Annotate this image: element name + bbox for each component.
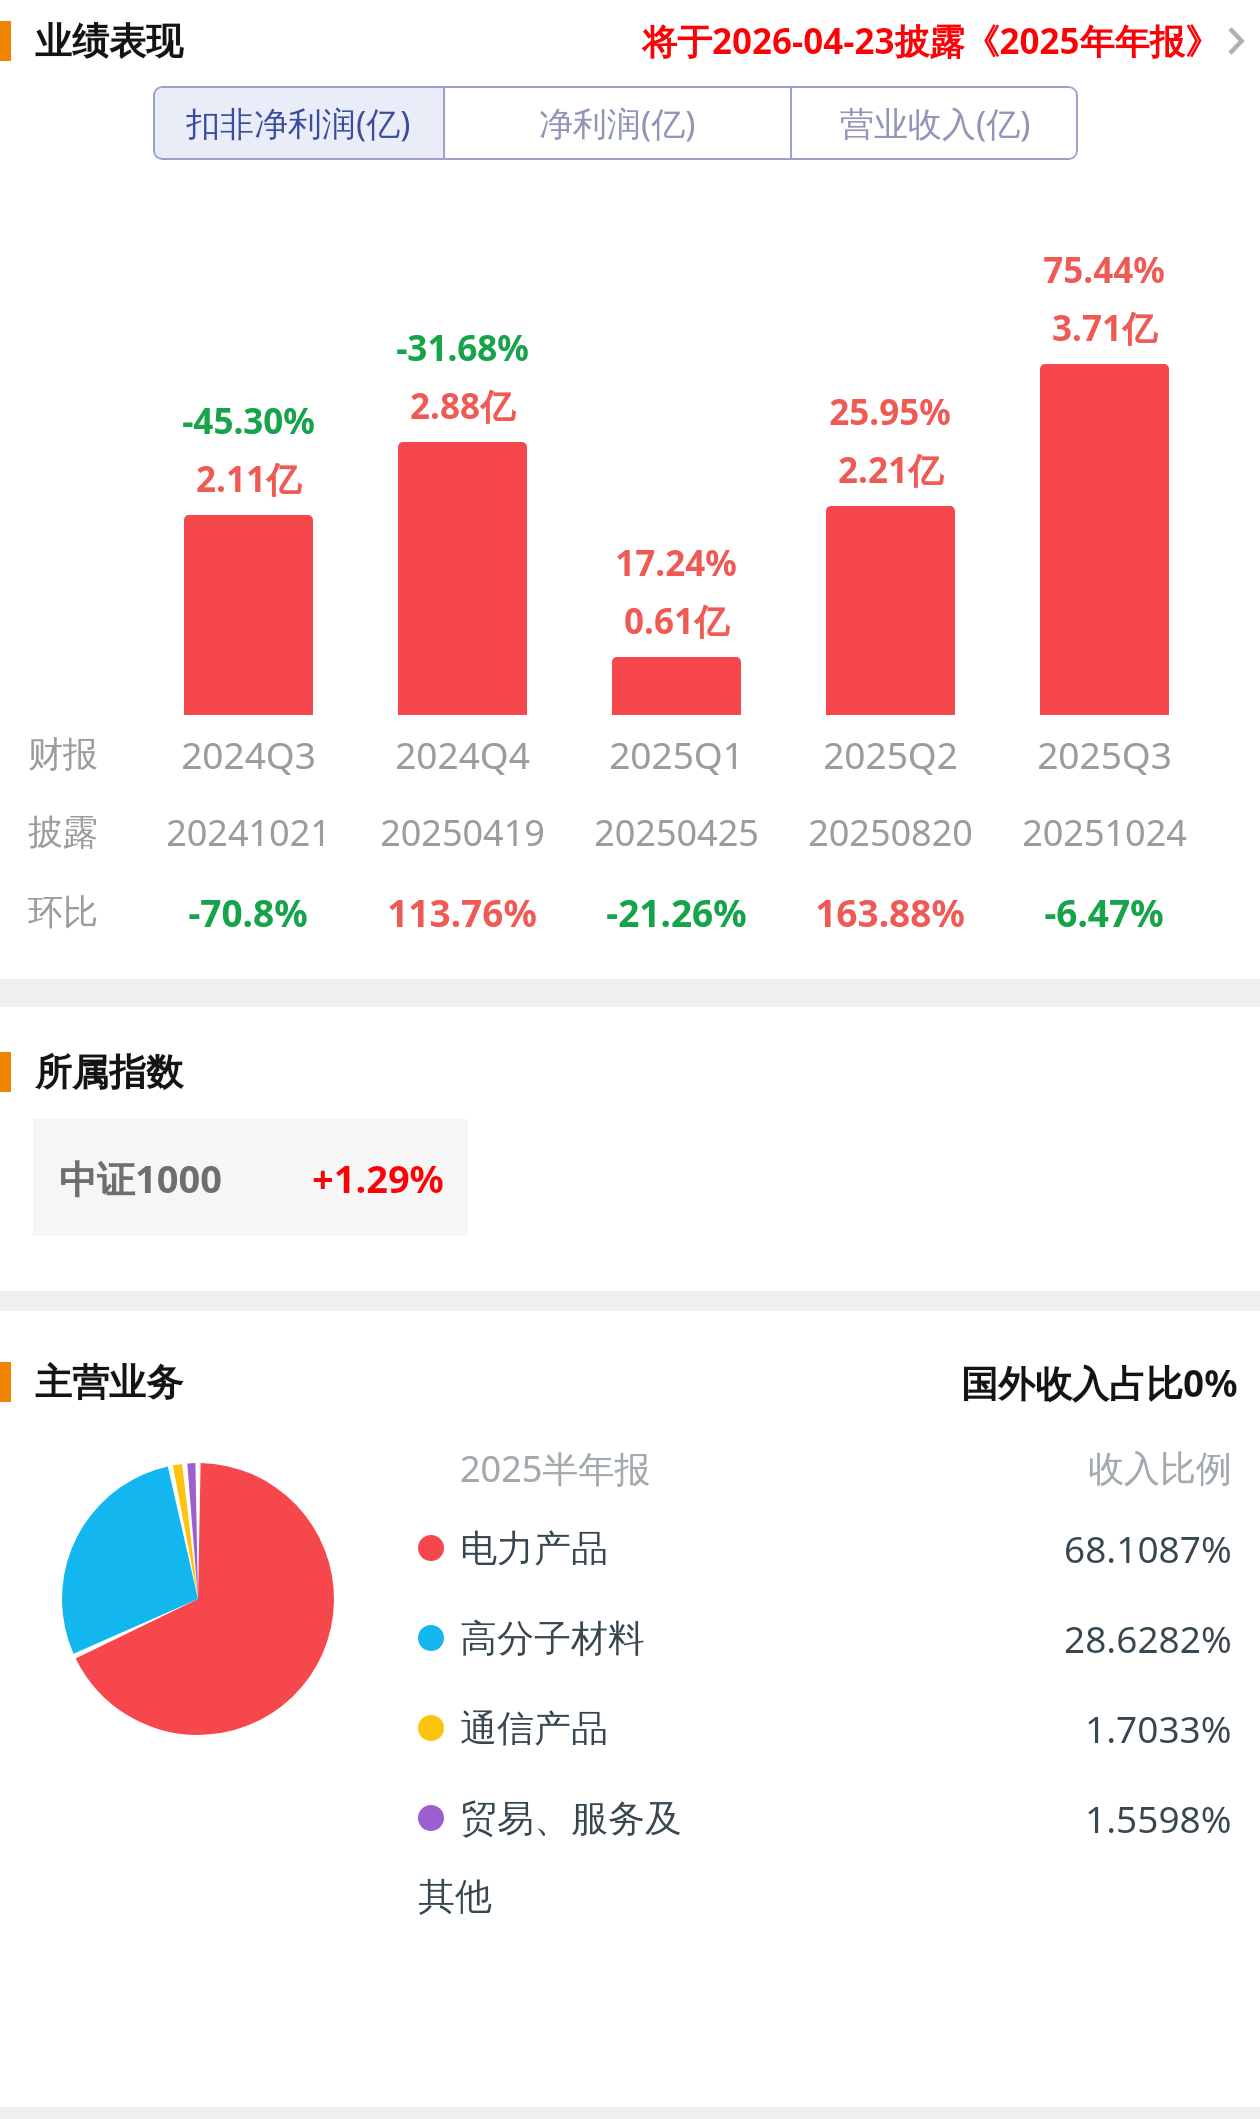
staticText: 披露 <box>28 810 98 854</box>
button[interactable]: 高分子材料 <box>400 1593 1232 1683</box>
button[interactable]: 通信产品 <box>400 1683 1232 1773</box>
staticText: 0.61亿 <box>624 597 729 645</box>
staticText: 高分子材料 <box>460 1615 645 1662</box>
staticText: -21.26% <box>606 887 747 937</box>
staticText: 75.44% <box>1043 246 1165 294</box>
staticText: 20250419 <box>380 808 545 857</box>
staticText: 28.6282% <box>1064 1613 1232 1663</box>
staticText: 2024Q3 <box>181 729 316 779</box>
staticText: 业绩表现 <box>35 18 183 65</box>
staticText: 1.5598% <box>1085 1793 1232 1843</box>
staticText: 20250425 <box>594 808 759 857</box>
staticText: 国外收入占比0% <box>961 1357 1238 1408</box>
button[interactable]: 25.95% <box>783 170 997 715</box>
staticText: +1.29% <box>312 1152 444 1204</box>
button[interactable]: 贸易、服务及 <box>400 1773 1232 1929</box>
staticText: 17.24% <box>615 539 737 587</box>
staticText: 113.76% <box>387 887 537 937</box>
staticText: 主营业务 <box>35 1359 183 1406</box>
staticText: 收入比例 <box>1088 1446 1232 1491</box>
staticText: 营业收入(亿) <box>840 100 1031 146</box>
staticText: -45.30% <box>182 397 315 445</box>
button[interactable]: -45.30% <box>141 170 355 715</box>
button[interactable]: 75.44% <box>997 170 1211 715</box>
staticText: 通信产品 <box>460 1705 608 1752</box>
staticText: -31.68% <box>396 324 529 372</box>
staticText: 其他 <box>418 1873 492 1920</box>
staticText: 25.95% <box>829 388 951 436</box>
staticText: -70.8% <box>188 887 308 937</box>
staticText: 1.7033% <box>1085 1703 1232 1753</box>
button[interactable]: 将于2026-04-23披露《2025年年报》 <box>642 17 1260 65</box>
staticText: 2025半年报 <box>460 1444 651 1493</box>
staticText: 2025Q3 <box>1037 729 1172 779</box>
button[interactable]: 扣非净利润(亿) <box>153 86 443 160</box>
staticText: 2.88亿 <box>410 382 515 430</box>
staticText: 163.88% <box>815 887 965 937</box>
staticText: 将于2026-04-23披露《2025年年报》 <box>642 17 1220 65</box>
staticText: 环比 <box>28 890 98 934</box>
staticText: 3.71亿 <box>1052 304 1157 352</box>
staticText: 净利润(亿) <box>539 100 696 146</box>
staticText: 贸易、服务及 <box>460 1795 682 1842</box>
button[interactable]: 净利润(亿) <box>445 86 790 160</box>
staticText: 2025Q1 <box>609 729 744 779</box>
button[interactable]: 电力产品 <box>400 1503 1232 1593</box>
staticText: 2.21亿 <box>838 446 943 494</box>
staticText: 68.1087% <box>1064 1523 1232 1573</box>
button[interactable]: 营业收入(亿) <box>792 86 1078 160</box>
staticText: 中证1000 <box>59 1152 222 1204</box>
staticText: 2.11亿 <box>196 455 301 503</box>
other: 查看详情 <box>1226 24 1246 58</box>
staticText: 20241021 <box>166 808 331 857</box>
button[interactable]: -31.68% <box>355 170 569 715</box>
staticText: 电力产品 <box>460 1525 608 1572</box>
staticText: 20251024 <box>1022 808 1187 857</box>
staticText: 2025Q2 <box>823 729 958 779</box>
button[interactable]: 17.24% <box>569 170 783 715</box>
staticText: 财报 <box>28 732 98 776</box>
staticText: 20250820 <box>808 808 973 857</box>
button[interactable]: 中证1000 <box>33 1119 468 1236</box>
staticText: 所属指数 <box>35 1049 183 1096</box>
staticText: 2024Q4 <box>395 729 530 779</box>
staticText: 扣非净利润(亿) <box>186 100 411 146</box>
staticText: -6.47% <box>1044 887 1164 937</box>
